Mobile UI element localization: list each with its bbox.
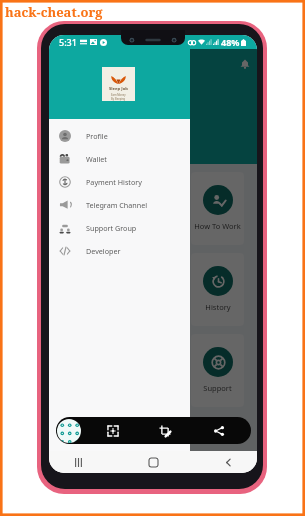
staticText: History	[205, 302, 231, 312]
button[interactable]: Referral	[127, 172, 180, 245]
staticText: Developer	[86, 246, 121, 256]
staticText: Task	[81, 221, 97, 231]
button[interactable]: Notifications	[236, 55, 254, 73]
staticText: 5:31	[59, 36, 77, 48]
button[interactable]: Task	[62, 172, 116, 245]
button[interactable]: Wallet	[49, 147, 190, 170]
staticText: Telegram Channel	[86, 200, 148, 210]
staticText: Sleep Job	[109, 86, 128, 92]
staticText: Profile	[86, 131, 108, 141]
button[interactable]: How To Work	[191, 172, 244, 245]
button[interactable]: Payment History	[49, 170, 190, 193]
staticText: By Sleeping	[111, 97, 126, 101]
button[interactable]: Share	[211, 423, 227, 439]
staticText: Wallet	[86, 154, 107, 164]
staticText: Payment History	[86, 177, 142, 187]
button[interactable]: Crop and draw	[157, 423, 173, 439]
button[interactable]: Back	[221, 455, 235, 469]
staticText: How To Work	[194, 221, 241, 231]
button[interactable]: Home	[146, 455, 160, 469]
staticText: hack-cheat.org	[5, 3, 103, 21]
button[interactable]: Leaderboard	[62, 253, 116, 326]
staticText: 48%	[221, 36, 240, 48]
button[interactable]: Developer	[49, 239, 190, 262]
button[interactable]: Scroll capture	[105, 423, 121, 439]
button[interactable]: Profile	[49, 124, 190, 147]
button[interactable]: Support Group	[49, 216, 190, 239]
button[interactable]: Telegram Channel	[49, 193, 190, 216]
button[interactable]: Recents	[71, 455, 85, 469]
staticText: Support Group	[86, 223, 137, 233]
staticText: Earn Money	[111, 93, 126, 97]
staticText: 1207	[61, 111, 91, 129]
button[interactable]: History	[191, 253, 244, 326]
staticText: Support	[203, 383, 232, 393]
button[interactable]: Support	[191, 334, 244, 407]
button[interactable]: Screenshot preview	[57, 419, 81, 443]
